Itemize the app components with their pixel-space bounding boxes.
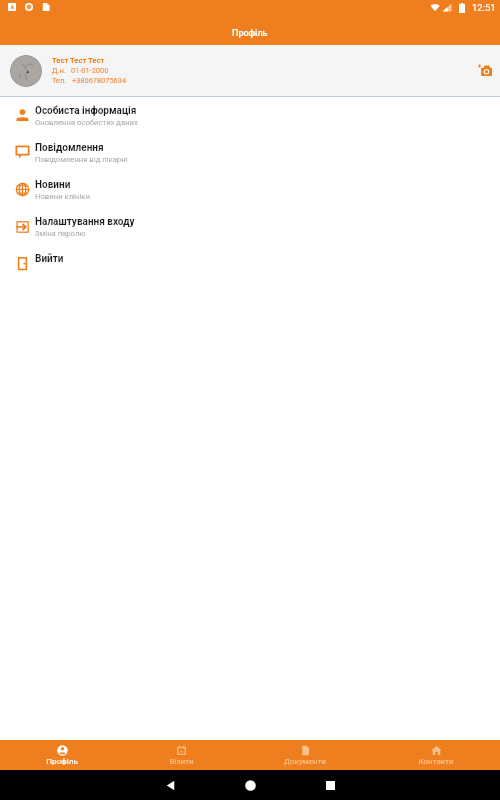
staticText: Особиста інформація <box>35 105 137 117</box>
button[interactable]: Повідомлення <box>0 134 500 171</box>
button[interactable]: Контакти <box>372 740 500 770</box>
button[interactable]: Change photo <box>474 59 496 81</box>
button[interactable]: Профіль <box>0 740 124 770</box>
staticText: Тел. <box>52 76 67 85</box>
staticText: Візити <box>169 757 194 766</box>
button[interactable]: Recent apps <box>290 770 370 800</box>
staticText: Д.н. <box>52 66 66 75</box>
staticText: Повідомлення <box>35 142 104 154</box>
button[interactable]: Back <box>130 770 210 800</box>
staticText: Зміна паролю <box>35 229 86 238</box>
button[interactable]: Новини <box>0 171 500 208</box>
button[interactable]: Налаштування входу <box>0 208 500 245</box>
button[interactable]: Особиста інформація <box>0 97 500 134</box>
staticText: Новини клініки <box>35 192 90 201</box>
staticText: Тест Тест Тест <box>52 56 105 65</box>
staticText: 01-01-2000 <box>71 66 109 75</box>
button[interactable]: Візити <box>124 740 238 770</box>
staticText: Новини <box>35 179 71 191</box>
staticText: Вийти <box>35 253 64 265</box>
staticText: 12:51 <box>472 2 496 13</box>
staticText: Оновлення особистих даних <box>35 118 138 127</box>
button[interactable]: Profile photo <box>10 55 42 87</box>
staticText: +380678075634 <box>72 76 127 85</box>
staticText: Налаштування входу <box>35 216 135 228</box>
button[interactable]: Документи <box>238 740 372 770</box>
staticText: Повідомлення від лікарні <box>35 155 128 164</box>
staticText: Контакти <box>418 757 454 766</box>
staticText: Профіль <box>46 757 78 766</box>
button[interactable]: Вийти <box>0 245 500 282</box>
staticText: Документи <box>284 757 326 766</box>
staticText: Профіль <box>232 28 268 39</box>
button[interactable]: Home <box>210 770 290 800</box>
